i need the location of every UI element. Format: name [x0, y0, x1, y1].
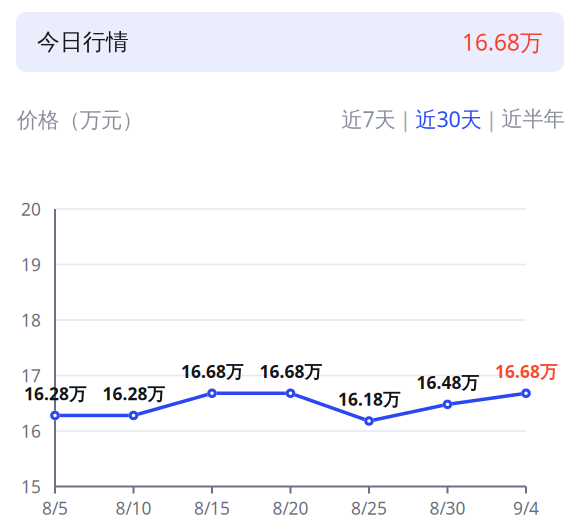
- staticText: 16.18万: [338, 387, 400, 410]
- staticText: 8/30: [429, 496, 465, 519]
- staticText: 近7天: [341, 105, 395, 133]
- staticText: 8/5: [42, 496, 68, 519]
- staticText: 17: [21, 364, 41, 387]
- staticText: 16.68万: [495, 360, 557, 383]
- staticText: 16: [21, 419, 41, 442]
- staticText: 近30天: [415, 105, 481, 133]
- staticText: 价格（万元）: [17, 107, 143, 133]
- staticText: 8/20: [272, 496, 308, 519]
- staticText: |: [399, 105, 411, 133]
- staticText: 16.68万: [462, 27, 543, 57]
- staticText: 19: [21, 253, 41, 276]
- staticText: 今日行情: [37, 28, 129, 56]
- staticText: 近半年: [501, 106, 564, 132]
- staticText: 20: [21, 197, 41, 220]
- staticText: 16.28万: [24, 382, 86, 405]
- button[interactable]: 近半年: [499, 106, 566, 132]
- staticText: 9/4: [513, 496, 539, 519]
- staticText: 8/25: [351, 496, 387, 519]
- staticText: 15: [21, 475, 41, 498]
- button[interactable]: 近30天: [413, 105, 483, 133]
- staticText: 18: [21, 308, 41, 331]
- staticText: |: [485, 105, 497, 133]
- staticText: 16.28万: [102, 382, 164, 405]
- button[interactable]: 近7天: [339, 105, 397, 133]
- staticText: 8/10: [115, 496, 151, 519]
- staticText: 16.68万: [181, 360, 243, 383]
- staticText: 16.68万: [259, 360, 321, 383]
- staticText: 8/15: [194, 496, 230, 519]
- staticText: 16.48万: [416, 371, 478, 394]
